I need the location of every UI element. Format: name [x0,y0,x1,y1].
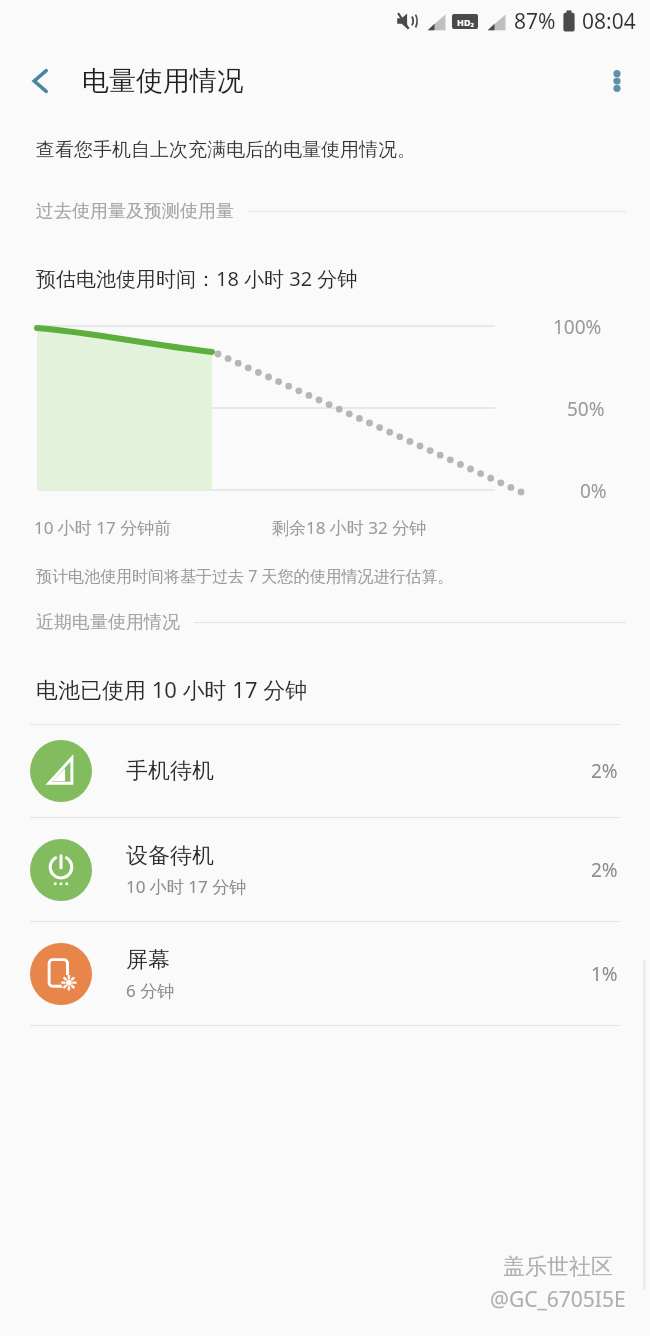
staticText: 0% [580,478,607,504]
staticText: 1% [591,961,618,987]
staticText: 盖乐世社区 [503,1253,613,1281]
staticText: 手机待机 [126,757,214,785]
staticText: 2% [591,857,618,883]
staticText: 10 小时 17 分钟 [126,875,247,898]
staticText: 电量使用情况 [82,64,244,98]
staticText: @GC_6705I5E [490,1285,626,1314]
staticText: HD₂ [457,16,474,28]
staticText: 查看您手机自上次充满电后的电量使用情况。 [36,138,416,162]
staticText: 预计电池使用时间将基于过去 7 天您的使用情况进行估算。 [36,565,454,587]
button[interactable]: More options [584,42,650,120]
staticText: 电池已使用 10 小时 17 分钟 [36,674,308,704]
staticText: 6 分钟 [126,979,175,1002]
staticText: 2% [591,758,618,784]
staticText: 10 小时 17 分钟前 [34,516,172,539]
staticText: 预估电池使用时间：18 小时 32 分钟 [36,265,358,292]
staticText: 08:04 [582,7,636,36]
staticText: 过去使用量及预测使用量 [36,200,234,223]
staticText: 剩余18 小时 32 分钟 [272,516,427,539]
button[interactable]: 屏幕 [0,922,650,1025]
staticText: 50% [567,396,605,422]
staticText: 近期电量使用情况 [36,611,180,634]
staticText: 87% [514,7,556,36]
staticText: 屏幕 [126,946,170,974]
staticText: 设备待机 [126,842,214,870]
button[interactable]: 设备待机 [0,818,650,921]
button[interactable]: 手机待机 [0,725,650,817]
button[interactable]: Back [0,42,82,120]
staticText: 100% [553,314,602,340]
